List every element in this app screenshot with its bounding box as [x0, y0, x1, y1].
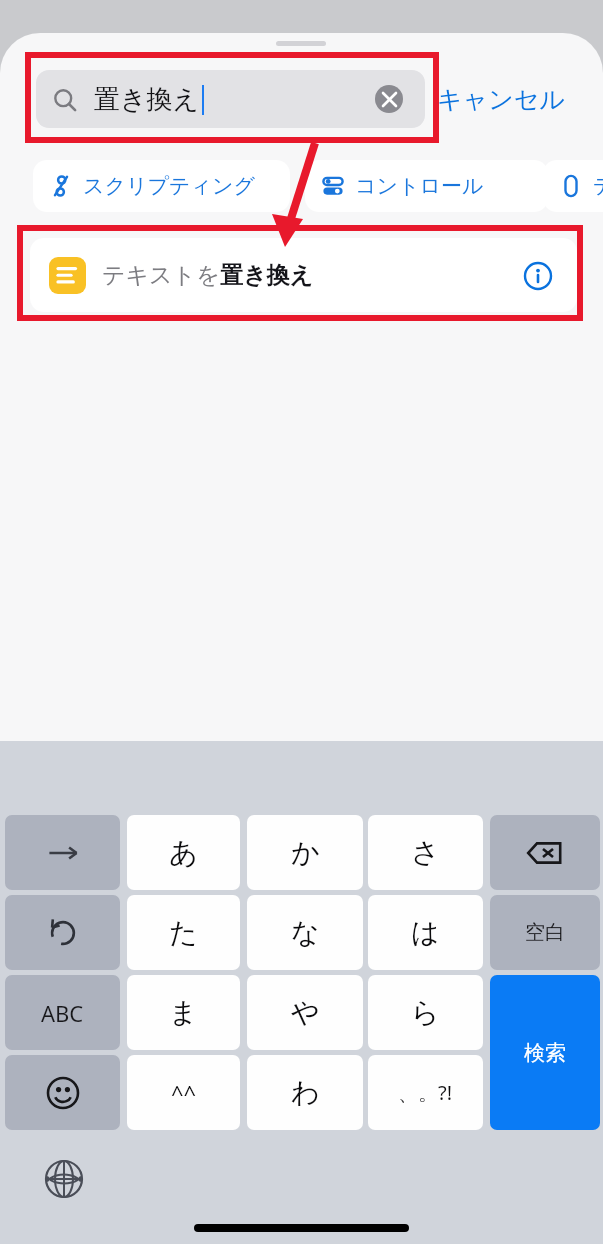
button[interactable]: Emoji — [5, 1055, 120, 1130]
button[interactable]: わ — [247, 1055, 363, 1130]
staticText: ら — [411, 995, 440, 1030]
staticText: わ — [291, 1075, 320, 1110]
button[interactable]: 検索 — [490, 975, 600, 1130]
button[interactable]: た — [127, 895, 240, 970]
button[interactable]: さ — [368, 815, 483, 890]
button[interactable]: あ — [127, 815, 240, 890]
button[interactable]: Info — [520, 258, 555, 293]
button[interactable]: 置き換え — [36, 70, 425, 128]
staticText: や — [291, 995, 320, 1030]
staticText: 、。?! — [398, 1079, 453, 1106]
button[interactable]: は — [368, 895, 483, 970]
button[interactable]: デ — [543, 160, 603, 212]
staticText: キャンセル — [437, 84, 565, 115]
staticText: 空白 — [525, 920, 565, 945]
staticText: ま — [169, 995, 198, 1030]
button[interactable]: ABC — [5, 975, 120, 1050]
staticText: デ — [593, 173, 603, 199]
button[interactable]: 、。?! — [368, 1055, 483, 1130]
staticText: ^^ — [171, 1078, 197, 1108]
button[interactable]: Next — [5, 815, 120, 890]
button[interactable]: Clear text — [375, 85, 403, 113]
button[interactable]: キャンセル — [437, 70, 587, 128]
staticText: か — [291, 835, 320, 870]
button[interactable]: テキストを — [30, 238, 577, 312]
button[interactable]: コントロール — [305, 160, 548, 212]
button[interactable]: や — [247, 975, 363, 1050]
button[interactable]: な — [247, 895, 363, 970]
staticText: ABC — [41, 998, 84, 1028]
staticText: な — [291, 915, 320, 950]
staticText: スクリプティング — [83, 173, 255, 199]
staticText: コントロール — [355, 173, 484, 199]
staticText: た — [169, 915, 198, 950]
staticText: 置き換え — [94, 83, 200, 116]
button[interactable]: Backspace — [490, 815, 600, 890]
staticText: さ — [411, 835, 440, 870]
staticText: 検索 — [524, 1040, 566, 1066]
staticText: 置き換え — [220, 261, 314, 290]
staticText: テキストを — [102, 261, 220, 290]
button[interactable]: 空白 — [490, 895, 600, 970]
button[interactable]: Switch keyboard — [40, 1155, 88, 1203]
button[interactable]: ^^ — [127, 1055, 240, 1130]
button[interactable]: ら — [368, 975, 483, 1050]
staticText: は — [411, 915, 440, 950]
button[interactable]: ま — [127, 975, 240, 1050]
button[interactable]: スクリプティング — [33, 160, 290, 212]
button[interactable]: Undo — [5, 895, 120, 970]
staticText: あ — [169, 835, 198, 870]
button[interactable]: か — [247, 815, 363, 890]
